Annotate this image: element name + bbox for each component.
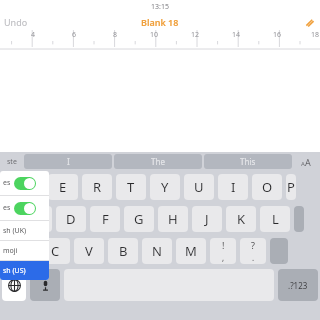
staticText: U: [194, 178, 204, 196]
button[interactable]: I: [24, 154, 112, 169]
staticText: A: [305, 156, 311, 168]
button[interactable]: .?123: [278, 269, 318, 301]
staticText: L: [272, 210, 279, 228]
staticText: 12: [191, 30, 200, 40]
staticText: sh (UK): [3, 226, 27, 236]
staticText: T: [127, 178, 135, 196]
button[interactable]: Q: [0, 174, 10, 200]
button[interactable]: !: [210, 238, 236, 264]
button[interactable]: B: [108, 238, 138, 264]
staticText: F: [102, 210, 109, 228]
button[interactable]: This: [204, 154, 292, 169]
staticText: 14: [232, 30, 241, 40]
staticText: Undo: [4, 16, 28, 28]
staticText: 8: [113, 30, 118, 40]
button[interactable]: Y: [150, 174, 180, 200]
staticText: J: [205, 210, 209, 228]
button[interactable]: P: [286, 174, 296, 200]
button[interactable]: [270, 238, 288, 264]
button[interactable]: F: [90, 206, 120, 232]
button[interactable]: G: [124, 206, 154, 232]
staticText: R: [93, 178, 102, 196]
button[interactable]: W: [14, 174, 44, 200]
button[interactable]: M: [176, 238, 206, 264]
button[interactable]: sh (UK): [3, 221, 49, 240]
button[interactable]: S: [22, 206, 52, 232]
staticText: Blank 18: [141, 16, 179, 28]
button[interactable]: A: [0, 206, 18, 232]
staticText: es: [3, 178, 11, 188]
button[interactable]: sh (US): [3, 261, 49, 280]
button[interactable]: U: [184, 174, 214, 200]
button[interactable]: es: [3, 196, 46, 220]
button[interactable]: X: [6, 238, 36, 264]
staticText: 4: [31, 30, 36, 40]
staticText: This: [240, 156, 256, 167]
staticText: Q: [0, 178, 1, 196]
staticText: es: [3, 203, 11, 213]
button[interactable]: Z: [0, 238, 2, 264]
staticText: S: [33, 210, 41, 228]
staticText: H: [168, 210, 178, 228]
staticText: O: [262, 178, 273, 196]
button[interactable]: N: [142, 238, 172, 264]
staticText: D: [66, 210, 76, 228]
staticText: 13:15: [151, 2, 169, 12]
button[interactable]: V: [74, 238, 104, 264]
staticText: ?: [251, 239, 255, 251]
button[interactable]: The: [114, 154, 202, 169]
staticText: ,: [222, 252, 225, 263]
staticText: sh (US): [3, 266, 26, 276]
staticText: B: [119, 242, 128, 260]
button[interactable]: C: [40, 238, 70, 264]
staticText: A: [301, 160, 305, 168]
staticText: V: [85, 242, 93, 260]
button[interactable]: Tools: [303, 16, 315, 28]
button[interactable]: Dictation: [30, 269, 60, 301]
button[interactable]: Undo: [4, 16, 28, 28]
staticText: Y: [161, 178, 169, 196]
staticText: .: [252, 252, 255, 263]
button[interactable]: es: [3, 171, 46, 195]
staticText: C: [51, 242, 60, 260]
staticText: 18: [311, 30, 320, 40]
staticText: 6: [72, 30, 77, 40]
staticText: G: [134, 210, 144, 228]
button[interactable]: H: [158, 206, 188, 232]
staticText: I: [67, 156, 70, 167]
button[interactable]: ste: [1, 152, 23, 171]
button[interactable]: E: [48, 174, 78, 200]
staticText: P: [287, 178, 295, 196]
button[interactable]: D: [56, 206, 86, 232]
button[interactable]: ?: [240, 238, 266, 264]
button[interactable]: R: [82, 174, 112, 200]
staticText: ste: [7, 157, 17, 167]
staticText: .?123: [288, 280, 308, 291]
button[interactable]: [294, 206, 304, 232]
button[interactable]: Text size: [293, 152, 319, 171]
button[interactable]: L: [260, 206, 290, 232]
button[interactable]: Change keyboard: [2, 269, 26, 301]
staticText: A: [0, 210, 8, 228]
button[interactable]: O: [252, 174, 282, 200]
staticText: W: [23, 178, 36, 196]
staticText: M: [185, 242, 197, 260]
button[interactable]: T: [116, 174, 146, 200]
staticText: !: [222, 239, 225, 251]
staticText: The: [151, 156, 165, 167]
staticText: N: [152, 242, 162, 260]
staticText: 10: [150, 30, 159, 40]
button[interactable]: I: [218, 174, 248, 200]
staticText: 16: [273, 30, 282, 40]
button[interactable]: K: [226, 206, 256, 232]
button[interactable]: J: [192, 206, 222, 232]
button[interactable]: moji: [3, 241, 49, 260]
staticText: E: [59, 178, 67, 196]
staticText: I: [231, 178, 236, 196]
staticText: K: [237, 210, 246, 228]
staticText: moji: [3, 246, 18, 256]
